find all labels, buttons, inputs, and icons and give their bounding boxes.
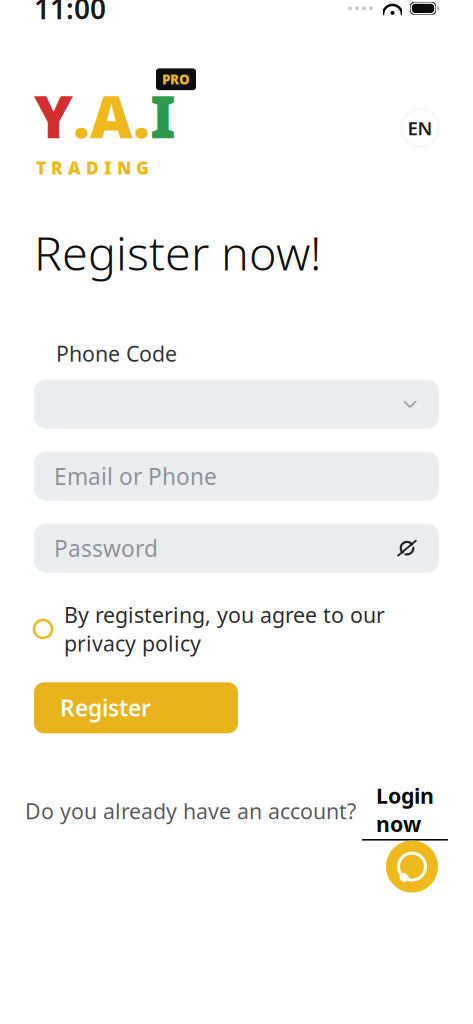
staticText: . xyxy=(133,76,150,154)
staticText: Register xyxy=(60,693,151,723)
staticText: T R A D I N G xyxy=(36,156,149,179)
button[interactable]: Email or Phone xyxy=(34,452,439,501)
staticText: Y xyxy=(34,76,73,154)
button[interactable] xyxy=(34,380,439,429)
button[interactable]: Change language xyxy=(401,109,439,147)
staticText: PRO xyxy=(162,70,190,88)
button[interactable]: Do you already have an account? xyxy=(0,733,473,841)
staticText: Email or Phone xyxy=(54,461,217,491)
button[interactable]: By registering, you agree to our privacy… xyxy=(0,573,473,657)
staticText: Phone Code xyxy=(56,339,177,368)
button[interactable]: Password xyxy=(34,524,439,573)
staticText: 11:00 xyxy=(34,0,106,27)
staticText: Login now xyxy=(376,781,434,838)
staticText: Do you already have an account? xyxy=(25,797,356,825)
staticText: EN xyxy=(407,115,432,140)
staticText: I xyxy=(150,76,176,154)
staticText: Password xyxy=(54,533,158,563)
staticText: Register now! xyxy=(34,221,321,283)
staticText: By registering, you agree to our privacy… xyxy=(64,601,385,657)
staticText: Z xyxy=(406,852,418,879)
staticText: A xyxy=(90,76,133,154)
button[interactable]: Register xyxy=(34,682,238,733)
button[interactable]: Chat support xyxy=(386,841,438,893)
staticText: . xyxy=(73,76,90,154)
